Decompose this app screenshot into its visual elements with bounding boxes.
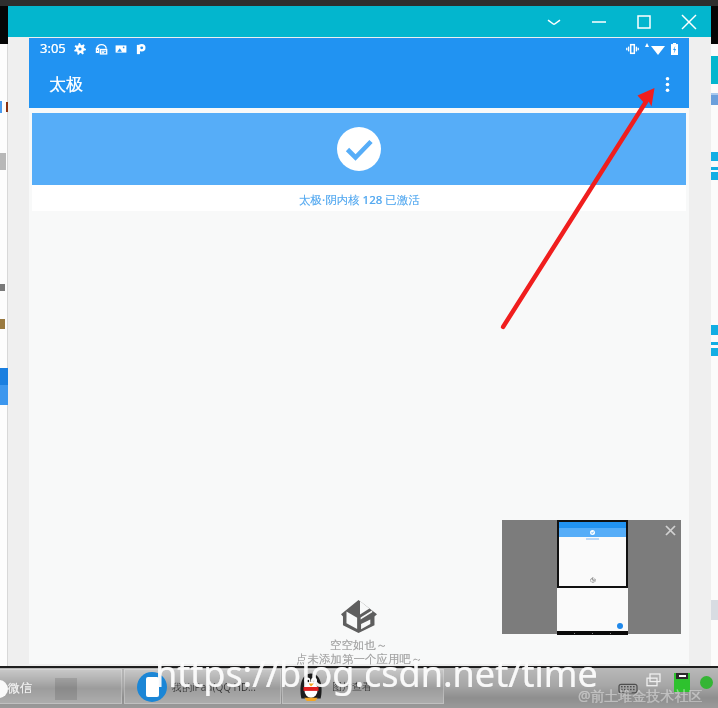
- staticText: 太极·阴内核 128 已激活: [299, 192, 420, 208]
- button[interactable]: Minimize: [576, 6, 621, 37]
- button[interactable]: 太极·阴内核 128 已激活: [32, 113, 686, 211]
- staticText: 微信: [8, 680, 32, 695]
- staticText: 点未添加第一个应用吧～: [296, 652, 423, 666]
- button[interactable]: Close: [666, 6, 711, 37]
- staticText: 太极: [49, 74, 83, 95]
- button[interactable]: Collapse: [531, 6, 576, 37]
- button[interactable]: Close preview: [660, 520, 680, 540]
- staticText: @前土堆金技术社区: [578, 686, 703, 705]
- staticText: 空空如也～: [330, 638, 388, 652]
- button[interactable]: 微信: [0, 669, 122, 704]
- button[interactable]: Maximize: [621, 6, 666, 37]
- button[interactable]: 图片查看: [282, 669, 444, 704]
- staticText: 我的iPad(QQ HD...: [172, 680, 256, 694]
- button[interactable]: 我的iPad(QQ HD...: [124, 669, 281, 704]
- staticText: 图片查看: [332, 680, 372, 693]
- staticText: https://blog.csdn.net/time: [155, 649, 598, 698]
- button[interactable]: More options: [645, 60, 689, 108]
- staticText: 3:05: [40, 39, 66, 57]
